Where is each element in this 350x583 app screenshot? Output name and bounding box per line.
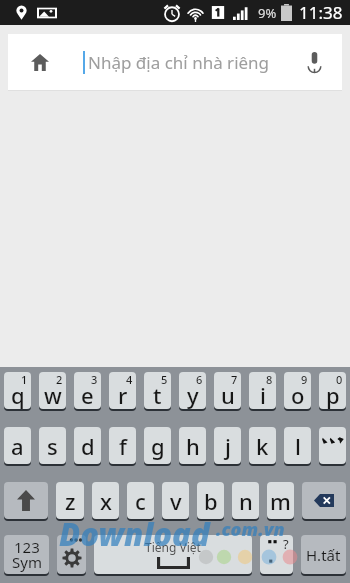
staticText: v [170,486,182,516]
button[interactable]: 6 [179,372,206,409]
staticText: y [187,380,199,409]
staticText: 8 [266,372,273,387]
button[interactable]: 4 [109,372,136,409]
button[interactable]: n [232,482,259,519]
button[interactable]: Punctuation [260,535,293,574]
staticText: a [11,431,24,461]
staticText: 3 [91,372,98,387]
staticText: j [225,431,231,461]
staticText: g [151,431,165,461]
staticText: 4 [126,372,133,387]
staticText: i [260,380,266,409]
staticText: p [326,380,340,409]
button[interactable]: f [109,427,136,464]
staticText: 5 [161,372,168,387]
button[interactable]: d [74,427,101,464]
staticText: e [81,380,94,409]
button[interactable]: 7 [214,372,241,409]
button[interactable]: g [144,427,171,464]
staticText: c [135,486,146,516]
staticText: Download [59,513,210,555]
staticText: 0 [336,372,343,387]
staticText: u [221,380,235,409]
button[interactable]: 5 [144,372,171,409]
button[interactable]: 3 [74,372,101,409]
button[interactable]: b [197,482,224,519]
button[interactable]: x [92,482,119,519]
staticText: o [291,380,305,409]
staticText: 1 [21,372,28,387]
button[interactable]: a [4,427,31,464]
button[interactable]: Voice search [286,34,342,90]
staticText: 6 [196,372,203,387]
button[interactable]: 8 [249,372,276,409]
staticText: n [239,486,253,516]
button[interactable]: z [56,482,84,519]
staticText: l [295,431,301,461]
staticText: q [11,380,25,409]
staticText: t [153,380,162,409]
staticText: 2 [56,372,63,387]
staticText: d [81,431,95,461]
button[interactable]: k [249,427,276,464]
button[interactable]: 123 [4,535,49,574]
staticText: H.tất [306,545,341,565]
staticText: k [256,431,269,461]
staticText: w [44,380,62,409]
staticText: 9 [301,372,308,387]
button[interactable]: 2 [39,372,66,409]
staticText: r [118,380,128,409]
staticText: 11:38 [299,1,343,24]
staticText: Tiếng Việt [145,539,201,555]
button[interactable]: Diacritics [319,427,346,464]
button[interactable]: c [127,482,154,519]
button[interactable]: m [267,482,294,519]
staticText: 7 [231,372,238,387]
button[interactable]: 0 [319,372,346,409]
staticText: ? [283,535,289,553]
button[interactable]: Home [8,34,72,90]
staticText: f [119,431,127,461]
staticText: h [186,431,200,461]
button[interactable]: Backspace [302,482,346,519]
staticText: Sym [12,552,42,572]
button[interactable]: v [162,482,189,519]
staticText: b [204,486,218,516]
staticText: m [270,486,291,516]
button[interactable]: Shift [4,482,48,519]
button[interactable]: 9 [284,372,311,409]
staticText: 123 [14,537,40,557]
button[interactable]: H.tất [301,535,346,574]
button[interactable]: l [284,427,311,464]
button[interactable]: j [214,427,241,464]
button[interactable]: 1 [4,372,31,409]
staticText: 9% [258,4,277,22]
staticText: s [47,431,58,461]
staticText: .com.vn [216,517,285,542]
button[interactable]: Space [94,535,252,574]
staticText: x [100,486,112,516]
button[interactable]: h [179,427,206,464]
button[interactable]: s [39,427,66,464]
button[interactable]: Settings [57,535,86,574]
staticText: z [65,486,76,516]
staticText: Nhập địa chỉ nhà riêng [88,51,270,74]
